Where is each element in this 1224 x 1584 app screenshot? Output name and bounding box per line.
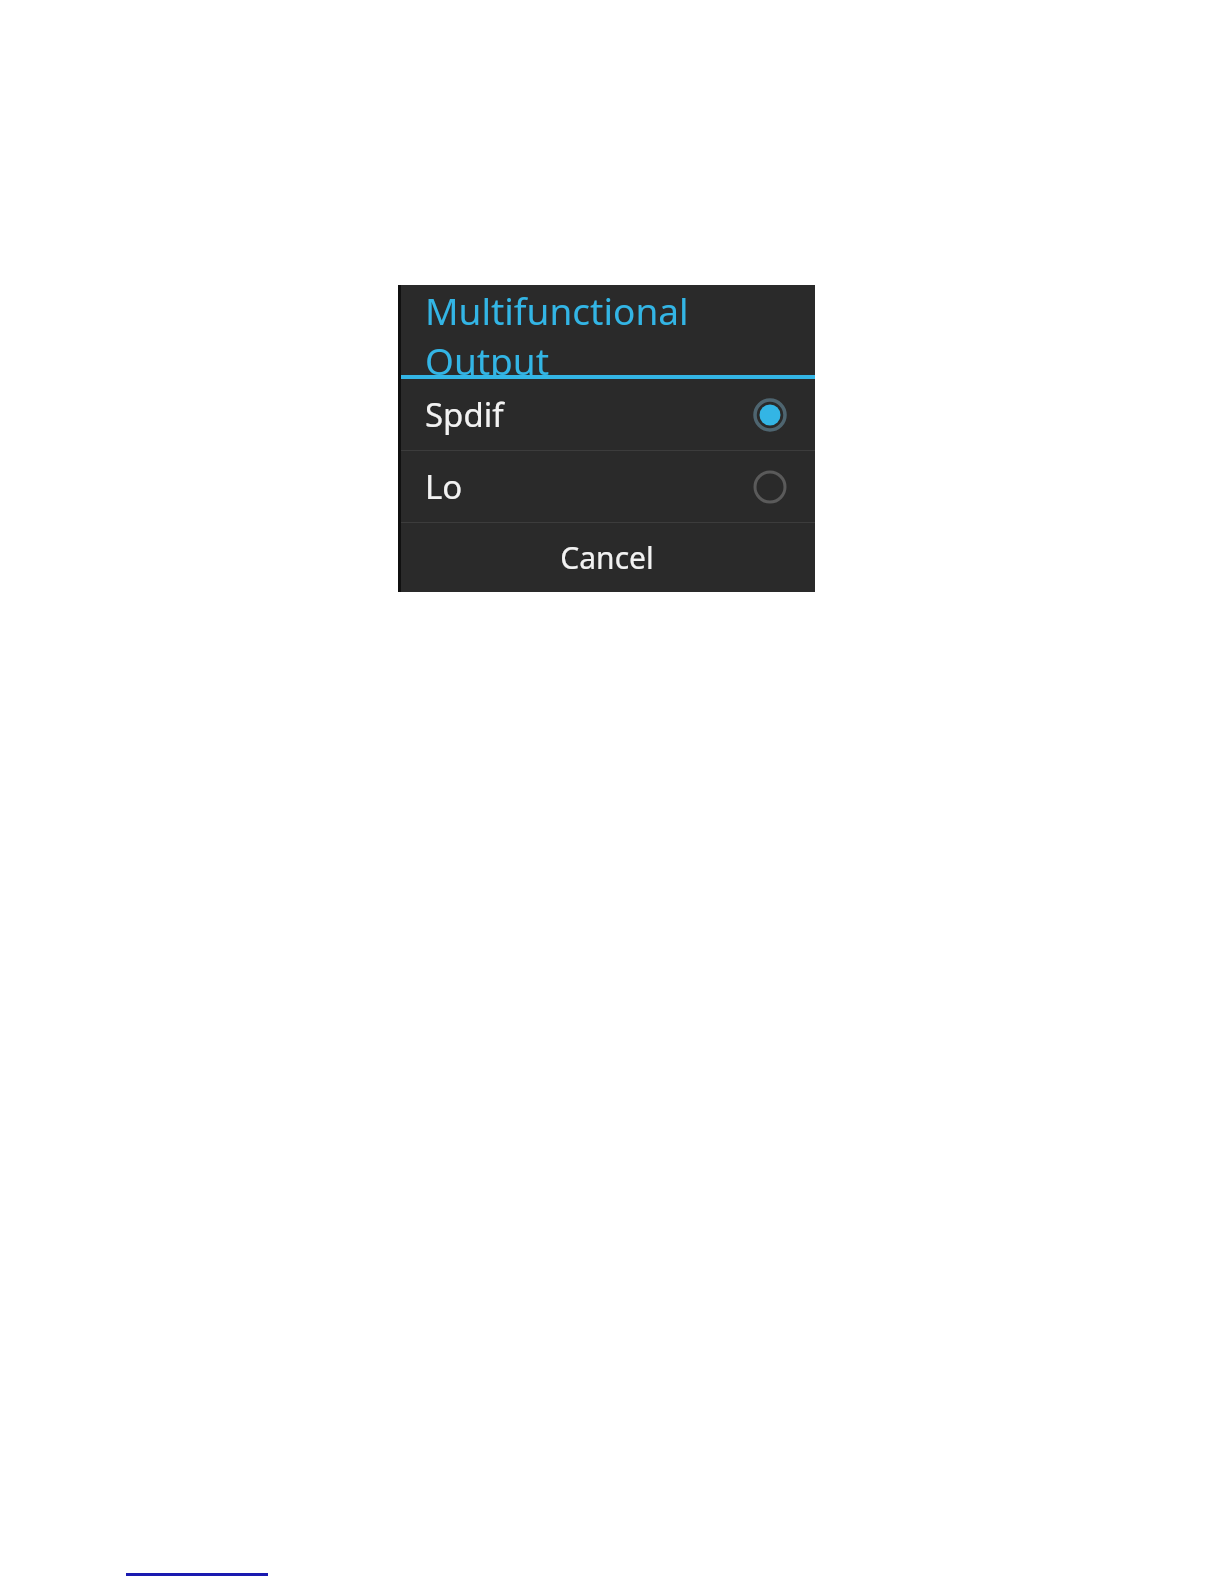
other: Select Lo xyxy=(753,470,787,504)
staticText: Lo xyxy=(425,464,463,509)
button[interactable]: Lo xyxy=(398,451,815,522)
staticText: Multifunctional Output xyxy=(425,285,815,375)
button[interactable]: Cancel xyxy=(398,523,815,592)
staticText: Cancel xyxy=(560,537,654,578)
other: Selected Spdif xyxy=(753,398,787,432)
staticText: Spdif xyxy=(425,392,504,437)
button[interactable]: Spdif xyxy=(398,379,815,450)
